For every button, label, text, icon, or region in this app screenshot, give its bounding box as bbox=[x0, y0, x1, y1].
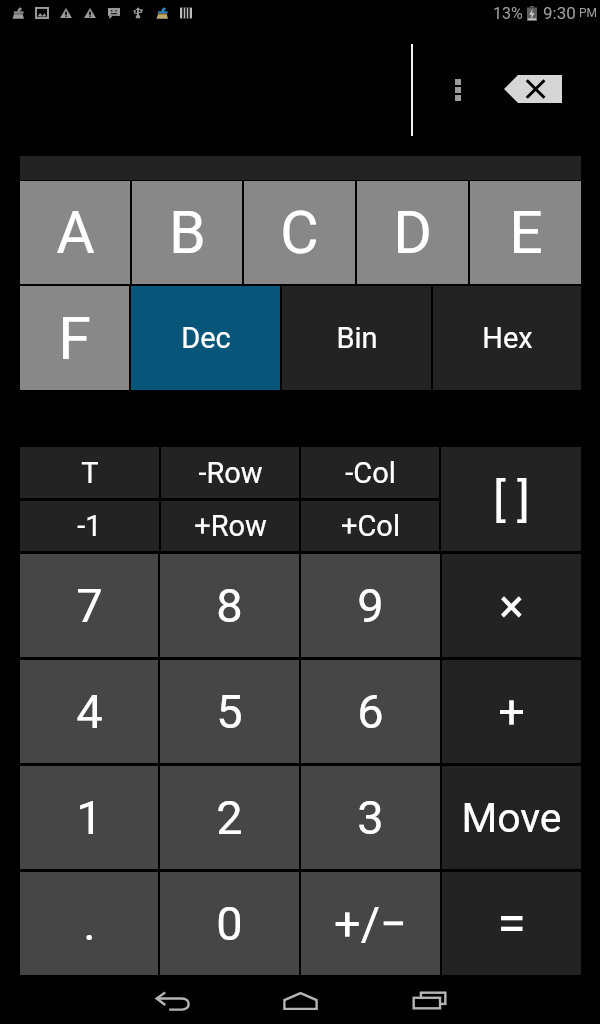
button[interactable]: +Col bbox=[301, 501, 439, 551]
button[interactable]: 3 bbox=[301, 766, 440, 869]
button[interactable]: Bin bbox=[282, 286, 431, 390]
button[interactable]: Hex bbox=[433, 286, 581, 390]
staticText: Move bbox=[461, 794, 562, 842]
button[interactable]: [ ] bbox=[441, 447, 581, 551]
staticText: -1 bbox=[77, 509, 102, 543]
staticText: C bbox=[280, 198, 319, 267]
staticText: +Row bbox=[194, 509, 267, 543]
staticText: 2 bbox=[216, 790, 243, 845]
staticText: = bbox=[497, 893, 526, 954]
button[interactable]: + bbox=[442, 660, 581, 763]
button[interactable]: Recent apps bbox=[385, 977, 474, 1024]
staticText: 6 bbox=[357, 684, 384, 739]
button[interactable]: . bbox=[20, 872, 158, 975]
staticText: [ ] bbox=[493, 472, 530, 527]
staticText: D bbox=[393, 198, 432, 267]
staticText: Hex bbox=[482, 321, 533, 355]
staticText: PM bbox=[579, 6, 598, 20]
button[interactable]: Dec bbox=[131, 286, 280, 390]
staticText: +/− bbox=[334, 896, 407, 951]
staticText: T bbox=[81, 456, 99, 490]
staticText: × bbox=[499, 579, 524, 633]
button[interactable]: 9 bbox=[301, 554, 440, 657]
button[interactable]: 8 bbox=[160, 554, 299, 657]
staticText: 0 bbox=[216, 896, 243, 951]
staticText: 1 bbox=[76, 790, 103, 845]
button[interactable]: A bbox=[20, 181, 130, 284]
button[interactable]: 7 bbox=[20, 554, 158, 657]
staticText: 13% bbox=[493, 4, 523, 23]
staticText: 4 bbox=[76, 684, 103, 739]
staticText: -Col bbox=[345, 456, 396, 490]
button[interactable]: 2 bbox=[160, 766, 299, 869]
staticText: F bbox=[58, 304, 91, 373]
button[interactable]: = bbox=[442, 872, 581, 975]
button[interactable]: -Row bbox=[161, 447, 299, 498]
button[interactable]: +/− bbox=[301, 872, 440, 975]
staticText: + bbox=[498, 684, 525, 739]
staticText: 8 bbox=[216, 578, 243, 633]
button[interactable]: 1 bbox=[20, 766, 158, 869]
staticText: -Row bbox=[198, 456, 263, 490]
button[interactable]: T bbox=[20, 447, 159, 498]
button[interactable]: 0 bbox=[160, 872, 299, 975]
button[interactable]: 5 bbox=[160, 660, 299, 763]
button[interactable]: Home bbox=[256, 977, 345, 1024]
staticText: Bin bbox=[336, 321, 378, 355]
button[interactable]: +Row bbox=[161, 501, 299, 551]
staticText: +Col bbox=[341, 509, 400, 543]
staticText: 9:30 bbox=[543, 3, 576, 23]
button[interactable]: × bbox=[442, 554, 581, 657]
button[interactable]: C bbox=[244, 181, 355, 284]
button[interactable]: -Col bbox=[301, 447, 439, 498]
button[interactable]: Move bbox=[442, 766, 581, 869]
staticText: 7 bbox=[76, 578, 103, 633]
button[interactable]: B bbox=[132, 181, 242, 284]
staticText: . bbox=[83, 896, 96, 951]
button[interactable]: Backspace bbox=[495, 61, 571, 117]
button[interactable]: -1 bbox=[20, 501, 159, 551]
button[interactable]: 6 bbox=[301, 660, 440, 763]
staticText: 3 bbox=[357, 790, 384, 845]
button[interactable]: F bbox=[20, 286, 129, 390]
staticText: E bbox=[509, 198, 543, 267]
button[interactable]: D bbox=[357, 181, 468, 284]
staticText: B bbox=[169, 198, 206, 267]
staticText: Dec bbox=[181, 321, 231, 355]
button[interactable]: E bbox=[470, 181, 581, 284]
staticText: 9 bbox=[357, 578, 384, 633]
staticText: A bbox=[56, 198, 95, 267]
staticText: 5 bbox=[216, 684, 243, 739]
button[interactable]: 4 bbox=[20, 660, 158, 763]
button[interactable]: More options bbox=[434, 62, 482, 118]
button[interactable]: Back bbox=[128, 977, 217, 1024]
